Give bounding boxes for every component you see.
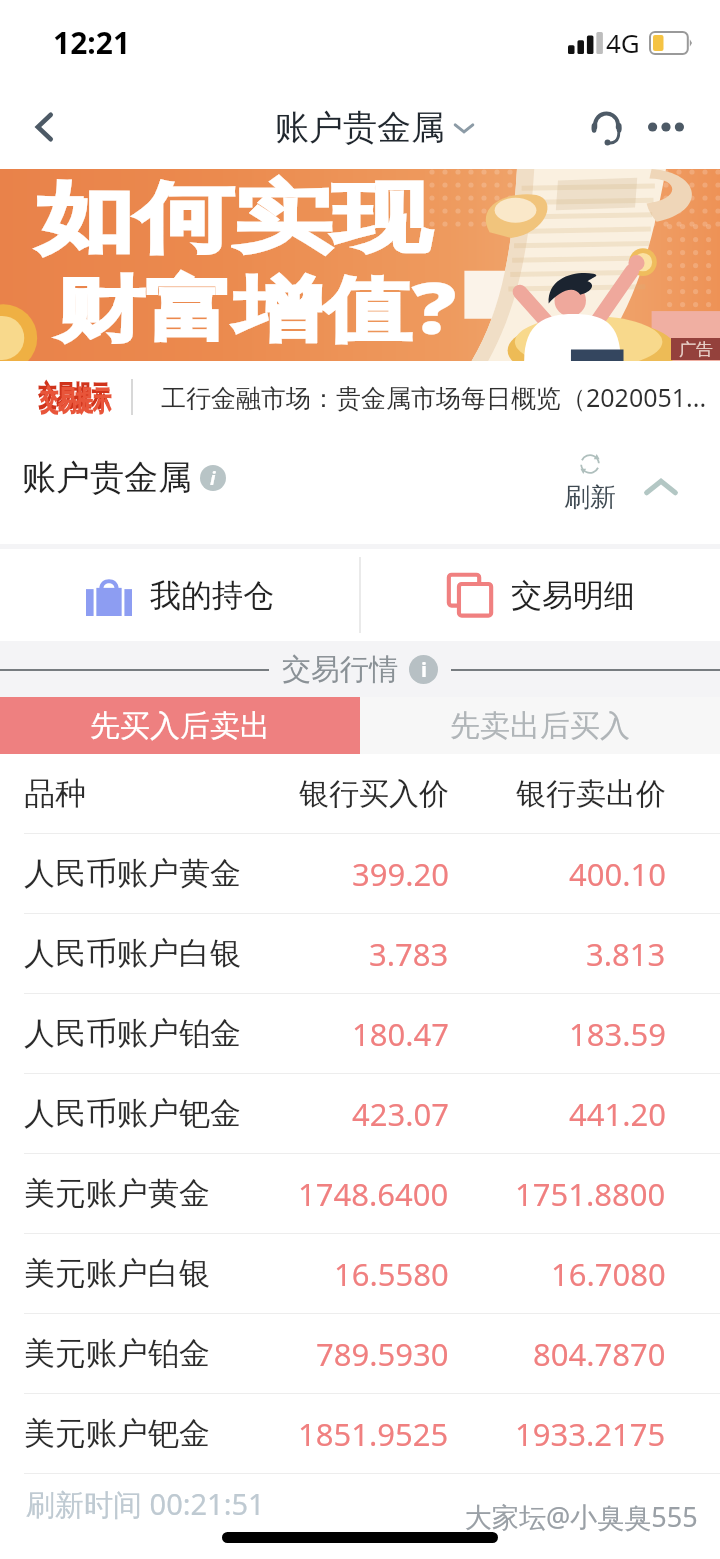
button[interactable]: 人民币账户钯金 (0, 1074, 720, 1153)
button[interactable]: Customer service (577, 98, 635, 156)
staticText: 180.47 (352, 1013, 449, 1055)
button[interactable]: Collapse (636, 467, 686, 507)
button[interactable]: 人民币账户白银 (0, 914, 720, 993)
staticText: 工行金融市场：贵金属市场每日概览（2020051... (161, 380, 707, 414)
staticText: 12:21 (53, 22, 131, 63)
staticText: 804.7870 (533, 1333, 666, 1375)
staticText: 3.783 (369, 933, 449, 975)
button[interactable]: 人民币账户黄金 (0, 834, 720, 913)
staticText: 品种 (24, 774, 86, 813)
staticText: 183.59 (569, 1013, 666, 1055)
staticText: 16.5580 (334, 1253, 449, 1295)
staticText: 1851.9525 (298, 1413, 449, 1455)
staticText: 广告 (679, 339, 713, 360)
button[interactable]: 账户贵金属 (275, 106, 475, 149)
staticText: 16.7080 (551, 1253, 666, 1295)
staticText: 3.813 (586, 933, 666, 975)
staticText: 账户贵金属 (22, 456, 192, 499)
staticText: 美元账户钯金 (24, 1414, 210, 1453)
button[interactable]: 交易明细 (361, 549, 720, 641)
staticText: i (210, 466, 216, 491)
button[interactable]: 账户贵金属 (22, 456, 226, 499)
staticText: 交易明细 (511, 576, 635, 615)
staticText: 交易提示 (40, 383, 111, 418)
staticText: 我的持仓 (150, 576, 274, 615)
staticText: 人民币账户钯金 (24, 1094, 241, 1133)
button[interactable]: 刷新 (557, 452, 623, 514)
staticText: 1933.2175 (515, 1413, 666, 1455)
button[interactable]: 先卖出后买入 (360, 697, 720, 754)
button[interactable]: Quote info (409, 655, 438, 684)
button[interactable]: Back (0, 85, 90, 169)
staticText: 1748.6400 (298, 1173, 449, 1215)
staticText: 账户贵金属 (275, 106, 445, 149)
staticText: 4G (606, 25, 640, 60)
button[interactable]: 先买入后卖出 (0, 697, 360, 754)
staticText: 423.07 (352, 1093, 449, 1135)
button[interactable]: 人民币账户铂金 (0, 994, 720, 1073)
staticText: 大家坛@小臭臭555 (465, 1498, 698, 1535)
staticText: 先买入后卖出 (90, 707, 270, 745)
staticText: 400.10 (569, 853, 666, 895)
staticText: 财富增值? (56, 259, 457, 355)
staticText: 如何实现 (36, 171, 431, 267)
staticText: 1751.8800 (515, 1173, 666, 1215)
button[interactable]: 如何实现 (0, 169, 720, 361)
button[interactable]: 美元账户白银 (0, 1234, 720, 1313)
staticText: 人民币账户铂金 (24, 1014, 241, 1053)
staticText: 399.20 (352, 853, 449, 895)
staticText: 刷新 (564, 481, 616, 514)
staticText: 交易行情 (282, 651, 398, 688)
other: Info (200, 465, 226, 491)
staticText: 美元账户铂金 (24, 1334, 210, 1373)
button[interactable]: 我的持仓 (0, 549, 359, 641)
staticText: 美元账户白银 (24, 1254, 210, 1293)
staticText: 人民币账户白银 (24, 934, 241, 973)
button[interactable]: 美元账户钯金 (0, 1394, 720, 1473)
staticText: 美元账户黄金 (24, 1174, 210, 1213)
staticText: 789.5930 (316, 1333, 449, 1375)
button[interactable]: 美元账户黄金 (0, 1154, 720, 1233)
staticText: 刷新时间 00:21:51 (26, 1484, 265, 1524)
staticText: i (421, 656, 427, 683)
staticText: 银行卖出价 (516, 775, 666, 813)
button[interactable]: 美元账户铂金 (0, 1314, 720, 1393)
button[interactable]: More options (637, 98, 695, 156)
staticText: 交易提示 (38, 378, 109, 413)
staticText: 人民币账户黄金 (24, 854, 241, 893)
staticText: 银行买入价 (299, 775, 449, 813)
staticText: 441.20 (569, 1093, 666, 1135)
staticText: 先卖出后买入 (450, 707, 630, 745)
button[interactable]: 交易提示 (0, 361, 720, 432)
